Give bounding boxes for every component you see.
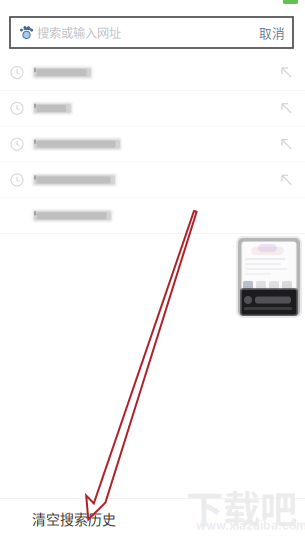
button[interactable]: 清空搜索历史 — [0, 499, 305, 538]
staticText: 清空搜索历史 — [32, 508, 116, 529]
staticText: 下载吧 — [186, 480, 297, 534]
button[interactable]: Search history entry — [0, 91, 305, 126]
button[interactable]: Search history entry — [0, 198, 305, 233]
button[interactable]: Search history entry — [0, 162, 305, 197]
staticText: www.xiazaiba.com — [196, 518, 305, 532]
staticText: 搜索或输入网址 — [37, 24, 121, 41]
staticText: 取消 — [259, 23, 285, 42]
button[interactable]: Search history entry — [0, 127, 305, 162]
button[interactable]: 取消 — [257, 23, 287, 42]
button[interactable]: Search history entry — [0, 55, 305, 90]
